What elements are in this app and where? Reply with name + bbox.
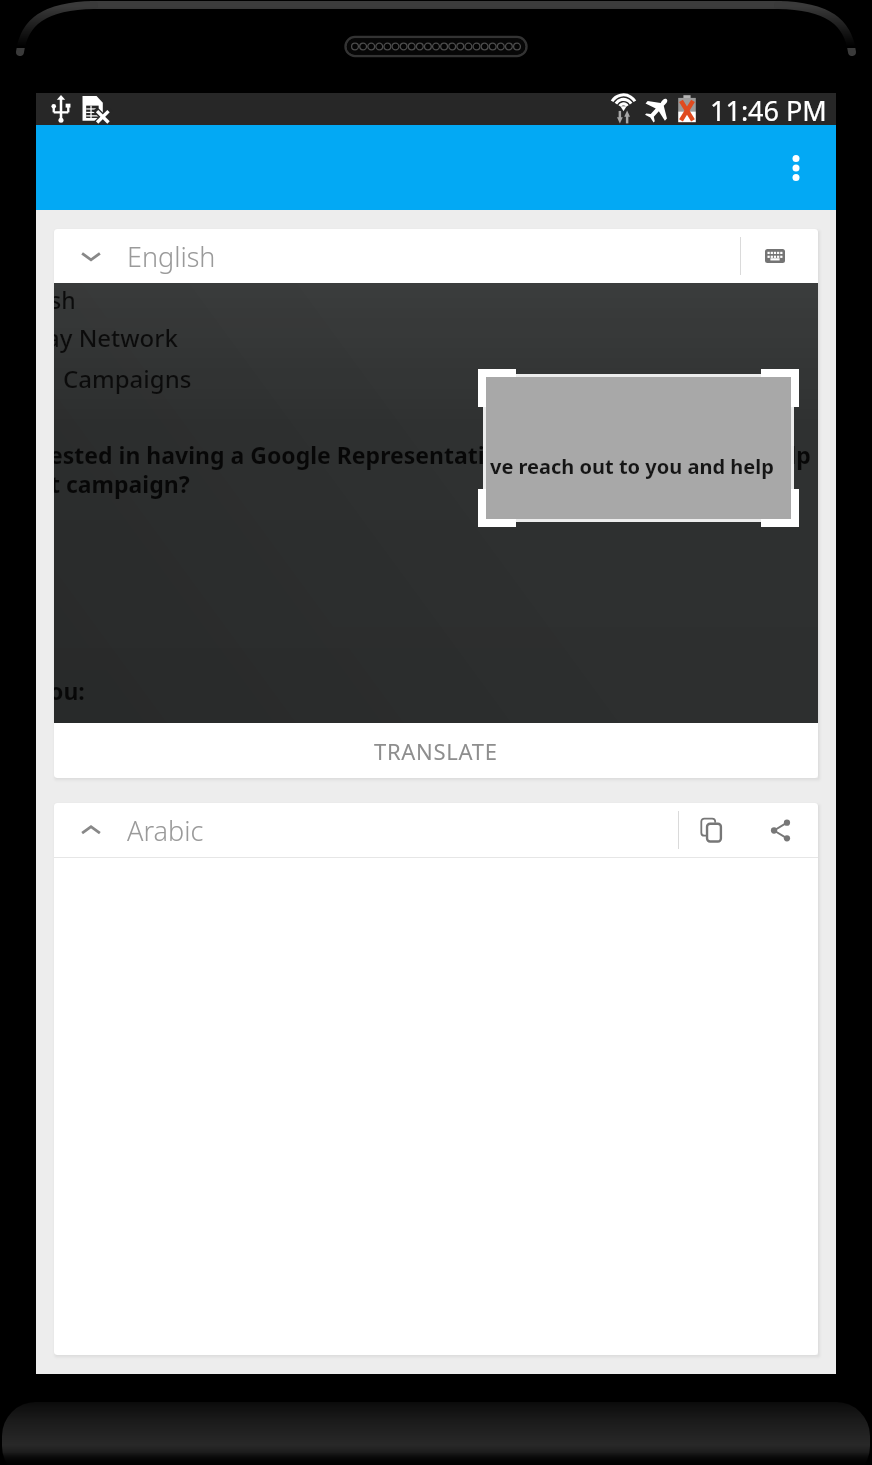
- staticText: ay Network: [54, 321, 178, 354]
- button[interactable]: Share: [743, 803, 818, 857]
- button[interactable]: Copy: [679, 803, 743, 857]
- staticText: ested in having a Google Representative …: [54, 439, 811, 470]
- staticText: 11:46 PM: [710, 92, 827, 124]
- staticText: TRANSLATE: [374, 736, 498, 766]
- button[interactable]: More options: [770, 142, 822, 194]
- button[interactable]: TRANSLATE: [54, 723, 818, 778]
- staticText: sh: [54, 284, 76, 315]
- button[interactable]: Camera viewfinder, tap to scan text: [54, 283, 818, 723]
- staticText: Campaigns: [63, 362, 192, 395]
- button[interactable]: English: [54, 229, 740, 283]
- staticText: Arabic: [127, 812, 204, 849]
- staticText: ou:: [54, 675, 85, 706]
- staticText: ve reach out to you and help: [490, 453, 774, 480]
- staticText: t campaign?: [54, 468, 190, 499]
- button[interactable]: Keyboard input: [741, 229, 818, 283]
- staticText: English: [127, 238, 216, 275]
- button[interactable]: Arabic: [54, 803, 678, 857]
